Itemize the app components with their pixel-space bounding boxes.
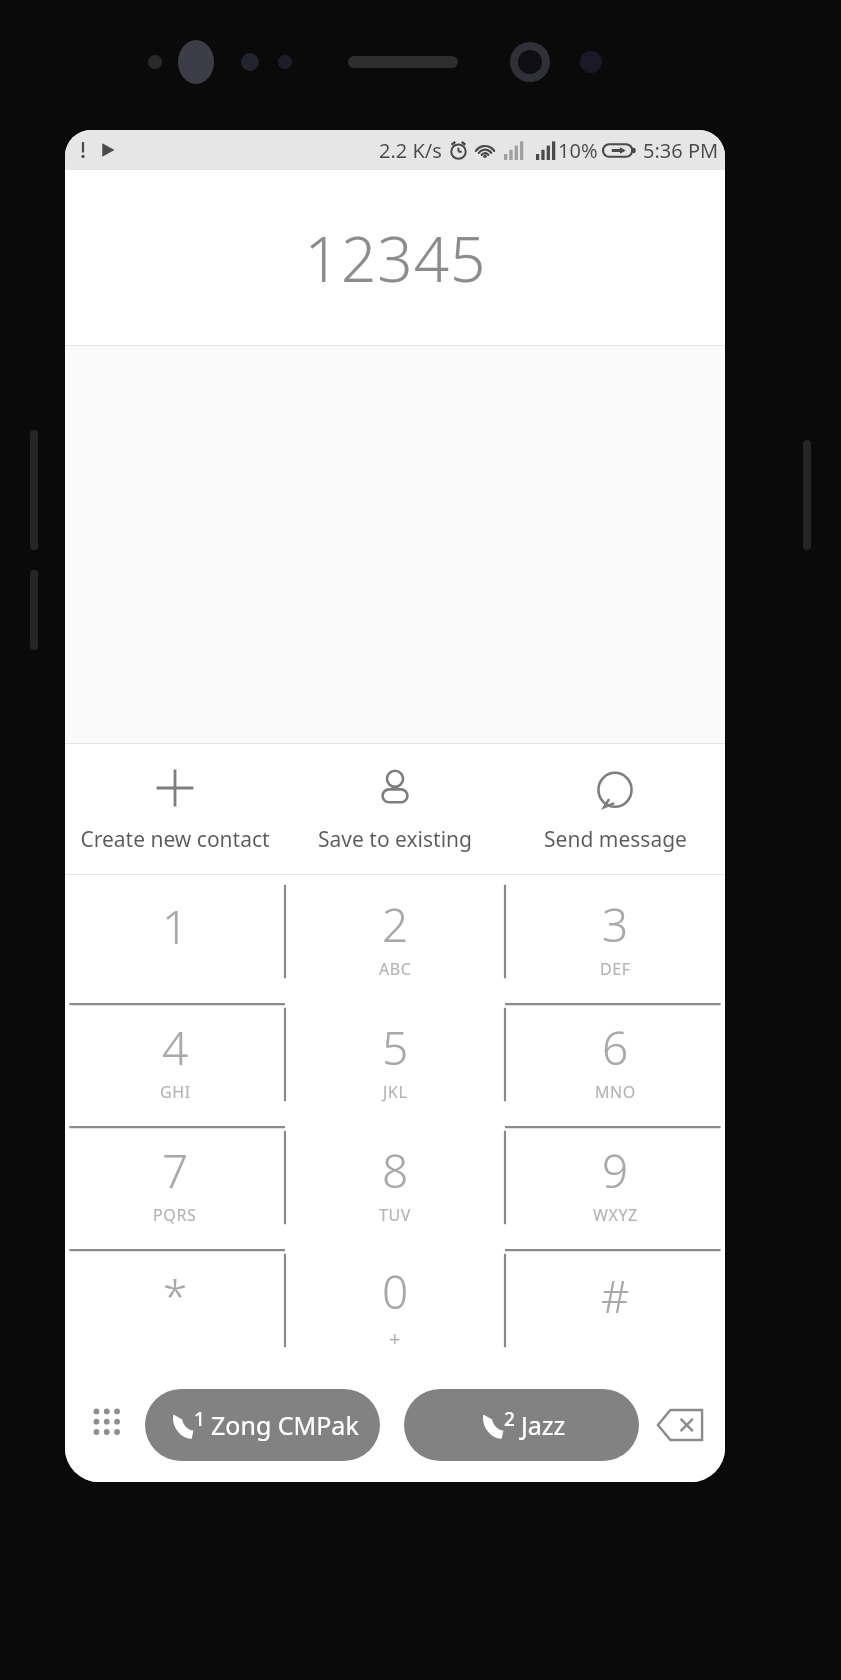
- staticText: JKL: [383, 1081, 408, 1103]
- staticText: 7: [162, 1139, 189, 1202]
- button[interactable]: 8: [285, 1121, 505, 1244]
- staticText: 4: [162, 1016, 189, 1079]
- button[interactable]: Create new contact: [65, 744, 285, 874]
- button[interactable]: 2: [404, 1389, 639, 1461]
- staticText: Send message: [544, 825, 687, 854]
- staticText: 1: [162, 895, 189, 958]
- staticText: *: [163, 1266, 188, 1326]
- button[interactable]: Show keypad: [79, 1396, 137, 1454]
- button[interactable]: 12345: [65, 170, 725, 345]
- staticText: 2.2 K/s: [379, 137, 442, 164]
- button[interactable]: 9: [505, 1121, 725, 1244]
- button[interactable]: Save to existing: [285, 744, 505, 874]
- button[interactable]: #: [505, 1244, 725, 1367]
- button[interactable]: *: [65, 1244, 285, 1367]
- staticText: MNO: [595, 1081, 636, 1103]
- staticText: TUV: [379, 1204, 411, 1226]
- staticText: 0: [382, 1260, 409, 1323]
- staticText: Zong CMPak: [211, 1408, 359, 1442]
- staticText: Create new contact: [80, 825, 270, 854]
- staticText: ABC: [379, 958, 412, 980]
- staticText: 1: [194, 1406, 205, 1432]
- button[interactable]: 1: [65, 875, 285, 998]
- button[interactable]: Backspace: [649, 1394, 711, 1456]
- button[interactable]: 3: [505, 875, 725, 998]
- button[interactable]: 6: [505, 998, 725, 1121]
- button[interactable]: 0: [285, 1244, 505, 1367]
- staticText: 8: [382, 1139, 409, 1202]
- button[interactable]: 4: [65, 998, 285, 1121]
- staticText: Save to existing: [318, 825, 472, 854]
- staticText: 9: [602, 1139, 629, 1202]
- button[interactable]: 5: [285, 998, 505, 1121]
- staticText: 5:36 PM: [643, 137, 719, 164]
- staticText: GHI: [160, 1081, 191, 1103]
- staticText: WXYZ: [593, 1204, 638, 1226]
- button[interactable]: 1: [145, 1389, 380, 1461]
- staticText: 12345: [304, 216, 487, 300]
- staticText: 10%: [558, 137, 598, 164]
- staticText: PQRS: [153, 1204, 197, 1226]
- staticText: 5: [382, 1016, 409, 1079]
- staticText: 6: [602, 1016, 629, 1079]
- staticText: 2: [382, 893, 409, 956]
- staticText: Jazz: [521, 1408, 566, 1442]
- staticText: 2: [504, 1406, 515, 1432]
- staticText: #: [601, 1266, 630, 1326]
- staticText: DEF: [600, 958, 631, 980]
- button[interactable]: 2: [285, 875, 505, 998]
- staticText: +: [389, 1325, 402, 1352]
- button[interactable]: 7: [65, 1121, 285, 1244]
- staticText: 3: [602, 893, 629, 956]
- button[interactable]: Send message: [505, 744, 725, 874]
